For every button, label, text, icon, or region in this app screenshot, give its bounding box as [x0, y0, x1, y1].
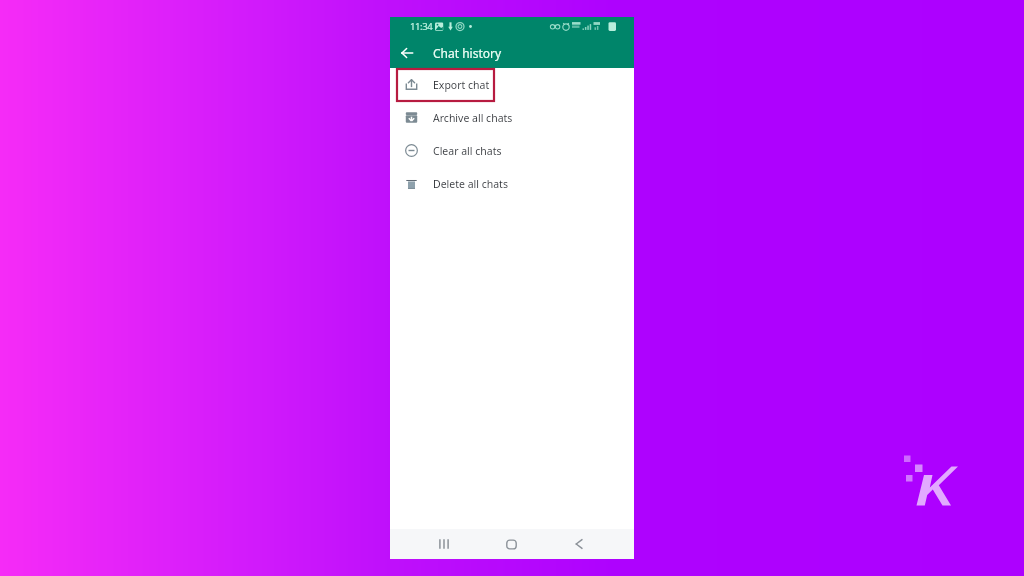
button[interactable]: Back [545, 529, 613, 559]
staticText: Clear all chats [433, 144, 502, 158]
staticText: 11:34 [410, 20, 433, 33]
staticText: Archive all chats [433, 111, 513, 125]
staticText: Export chat [433, 78, 490, 92]
button[interactable]: Home [477, 529, 545, 559]
button[interactable]: Back [395, 38, 418, 68]
button[interactable]: Archive all chats [390, 101, 634, 134]
button[interactable]: Export chat [390, 68, 634, 101]
button[interactable]: Delete all chats [390, 167, 634, 200]
staticText: Chat history [433, 45, 502, 61]
button[interactable]: Recent apps [410, 529, 477, 559]
button[interactable]: Clear all chats [390, 134, 634, 167]
staticText: Delete all chats [433, 177, 508, 191]
